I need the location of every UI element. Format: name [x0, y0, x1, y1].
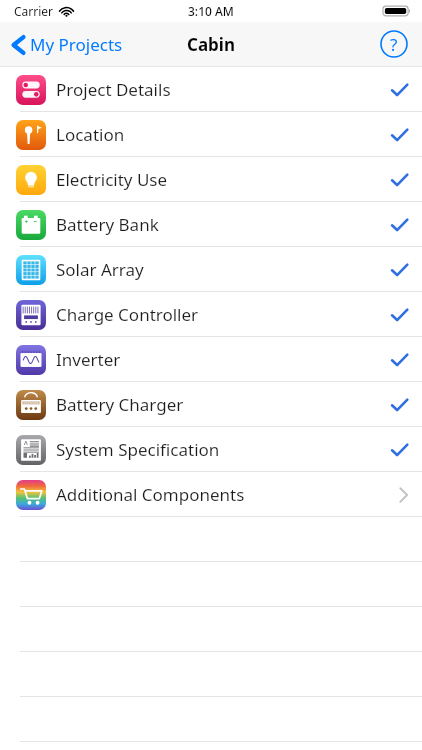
staticText: My Projects: [30, 33, 123, 56]
button[interactable]: Help: [378, 28, 410, 60]
button[interactable]: Project Details: [0, 67, 422, 112]
staticText: Charge Controller: [56, 303, 199, 326]
staticText: Cabin: [187, 33, 235, 56]
staticText: Project Details: [56, 78, 171, 101]
staticText: Inverter: [56, 348, 121, 371]
staticText: Carrier: [14, 3, 54, 19]
button[interactable]: Location: [0, 112, 422, 157]
button[interactable]: Battery Charger: [0, 382, 422, 427]
staticText: 3:10 AM: [188, 3, 234, 19]
button[interactable]: My Projects: [8, 29, 127, 60]
button[interactable]: Solar Array: [0, 247, 422, 292]
button[interactable]: Electricity Use: [0, 157, 422, 202]
button[interactable]: Inverter: [0, 337, 422, 382]
staticText: Battery Charger: [56, 393, 184, 416]
staticText: Additional Components: [56, 483, 245, 506]
button[interactable]: Battery Bank: [0, 202, 422, 247]
staticText: Battery Bank: [56, 213, 159, 236]
staticText: Solar Array: [56, 258, 144, 281]
button[interactable]: Charge Controller: [0, 292, 422, 337]
button[interactable]: System Specification: [0, 427, 422, 472]
staticText: Electricity Use: [56, 168, 168, 191]
staticText: Location: [56, 123, 125, 146]
button[interactable]: Additional Components: [0, 472, 422, 517]
staticText: ?: [390, 33, 398, 56]
staticText: System Specification: [56, 438, 220, 461]
